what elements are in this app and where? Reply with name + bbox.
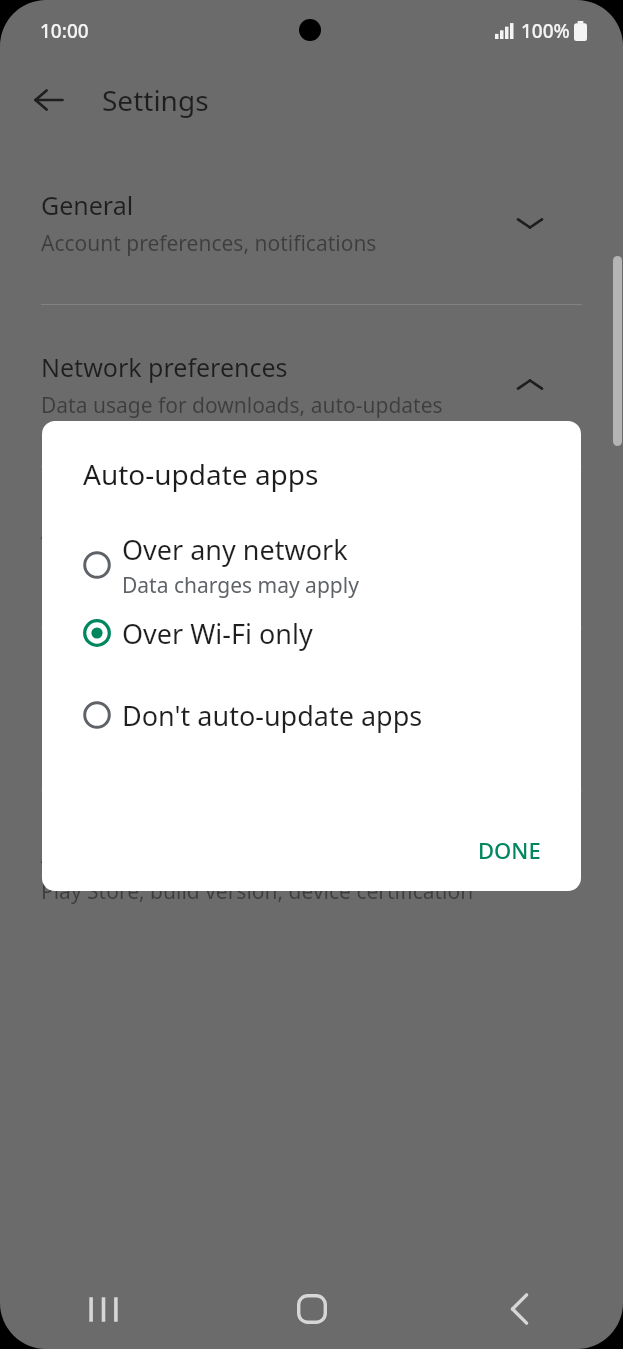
button[interactable]: Recents [0, 1269, 207, 1349]
button[interactable]: Back [416, 1269, 623, 1349]
staticText: Family [41, 674, 118, 708]
button[interactable]: DONE [462, 825, 557, 875]
staticText: Settings [102, 81, 209, 119]
button[interactable]: Back [26, 77, 72, 123]
staticText: General [41, 188, 134, 222]
staticText: Auto-update apps [83, 455, 319, 493]
staticText: Account preferences, notifications [41, 229, 377, 258]
button[interactable]: Authentication [0, 502, 623, 592]
staticText: 10:00 [40, 18, 89, 44]
staticText: Data charges may apply [122, 571, 359, 600]
button[interactable]: Don't auto-update apps [42, 687, 581, 743]
staticText: Over any network [122, 531, 348, 568]
staticText: Over Wi-Fi only [122, 615, 313, 652]
button[interactable]: Home [207, 1269, 416, 1349]
staticText: Network preferences [41, 350, 288, 384]
button[interactable]: Over any network [42, 525, 581, 605]
staticText: Parental control, parent guide [41, 715, 337, 744]
staticText: Data usage for downloads, auto-updates [41, 391, 443, 420]
staticText: DONE [478, 835, 541, 865]
staticText: Authentication [41, 512, 215, 546]
button[interactable]: About [0, 826, 623, 916]
staticText: Fingerprint, purchase authentication [41, 553, 403, 582]
staticText: 100% [521, 18, 570, 44]
button[interactable]: Over Wi-Fi only [42, 605, 581, 661]
button[interactable]: Family [0, 664, 623, 754]
button[interactable]: Network preferences [0, 340, 623, 430]
staticText: Play Store, build version, device certif… [41, 877, 474, 906]
staticText: Don't auto-update apps [122, 697, 423, 734]
button[interactable]: General [0, 178, 623, 268]
staticText: About [41, 836, 112, 870]
